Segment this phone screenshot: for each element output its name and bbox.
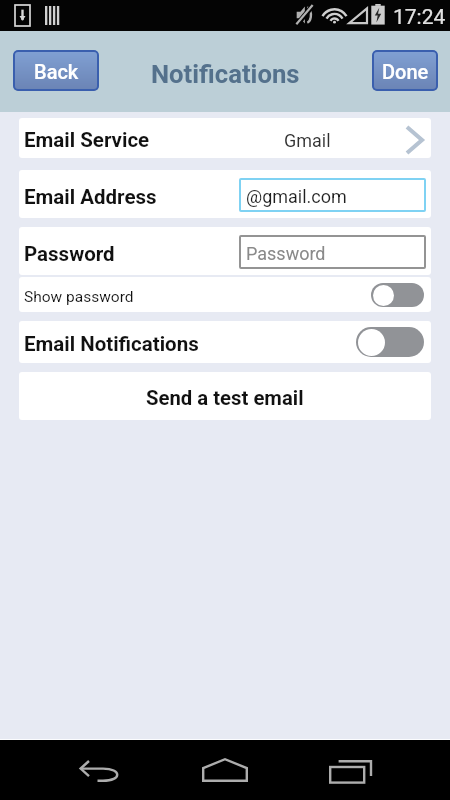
staticText: 17:24 — [393, 5, 446, 30]
button[interactable]: Toggle switch — [356, 327, 424, 357]
staticText: Done — [382, 60, 429, 83]
staticText: Password — [246, 243, 326, 264]
button[interactable]: Toggle switch — [371, 283, 424, 307]
button[interactable]: Back — [40, 740, 160, 800]
staticText: Send a test email — [146, 386, 304, 410]
staticText: Email Notifications — [24, 332, 199, 356]
button[interactable]: Done — [372, 50, 438, 91]
button[interactable]: Show password — [19, 277, 431, 312]
staticText: Notifications — [151, 59, 300, 89]
staticText: Email Address — [24, 185, 157, 209]
button[interactable]: Recent apps — [290, 740, 410, 800]
staticText: Email Service — [24, 128, 150, 152]
button[interactable]: Home — [165, 740, 285, 800]
staticText: Back — [34, 60, 79, 83]
button[interactable]: @gmail.com — [239, 178, 426, 212]
button[interactable]: Email Notifications — [19, 321, 431, 363]
button[interactable]: Email Address — [19, 170, 431, 218]
button[interactable]: Send a test email — [19, 372, 431, 420]
staticText: Password — [24, 242, 115, 266]
staticText: Gmail — [284, 130, 331, 151]
button[interactable]: Password — [19, 227, 431, 275]
button[interactable]: Email Service — [19, 118, 431, 158]
staticText: @gmail.com — [246, 186, 347, 207]
staticText: Show password — [24, 288, 134, 306]
button[interactable]: Password — [239, 235, 426, 269]
button[interactable]: Back — [13, 50, 99, 91]
